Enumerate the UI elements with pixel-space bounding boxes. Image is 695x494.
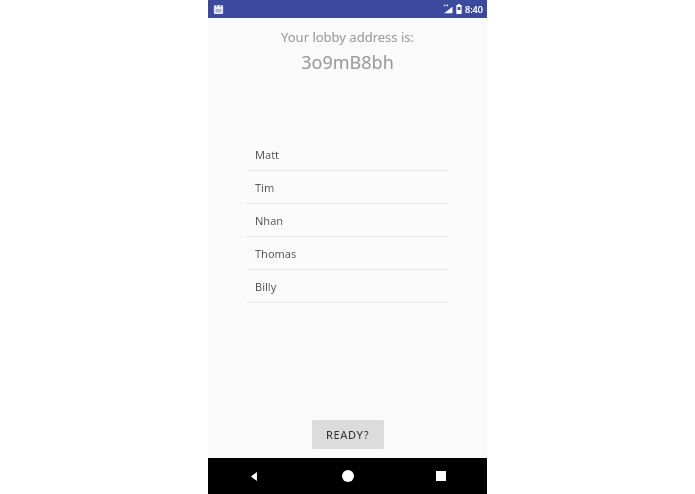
staticText: 8:40 xyxy=(465,3,483,15)
button[interactable]: Matt xyxy=(246,138,448,171)
staticText: 3o9mB8bh xyxy=(208,50,487,75)
staticText: Billy xyxy=(255,279,277,294)
staticText: Matt xyxy=(255,147,280,162)
staticText: Thomas xyxy=(255,246,297,261)
staticText: Tim xyxy=(255,180,275,195)
button[interactable]: Back xyxy=(208,458,301,494)
staticText: Your lobby address is: xyxy=(208,28,487,46)
button[interactable]: Thomas xyxy=(246,237,448,270)
staticText: READY? xyxy=(326,427,370,442)
button[interactable]: Billy xyxy=(246,270,448,303)
button[interactable]: Nhan xyxy=(246,204,448,237)
staticText: Nhan xyxy=(255,213,284,228)
button[interactable]: Home xyxy=(301,458,394,494)
button[interactable]: READY? xyxy=(312,420,384,449)
button[interactable]: Recent apps xyxy=(394,458,487,494)
button[interactable]: Tim xyxy=(246,171,448,204)
